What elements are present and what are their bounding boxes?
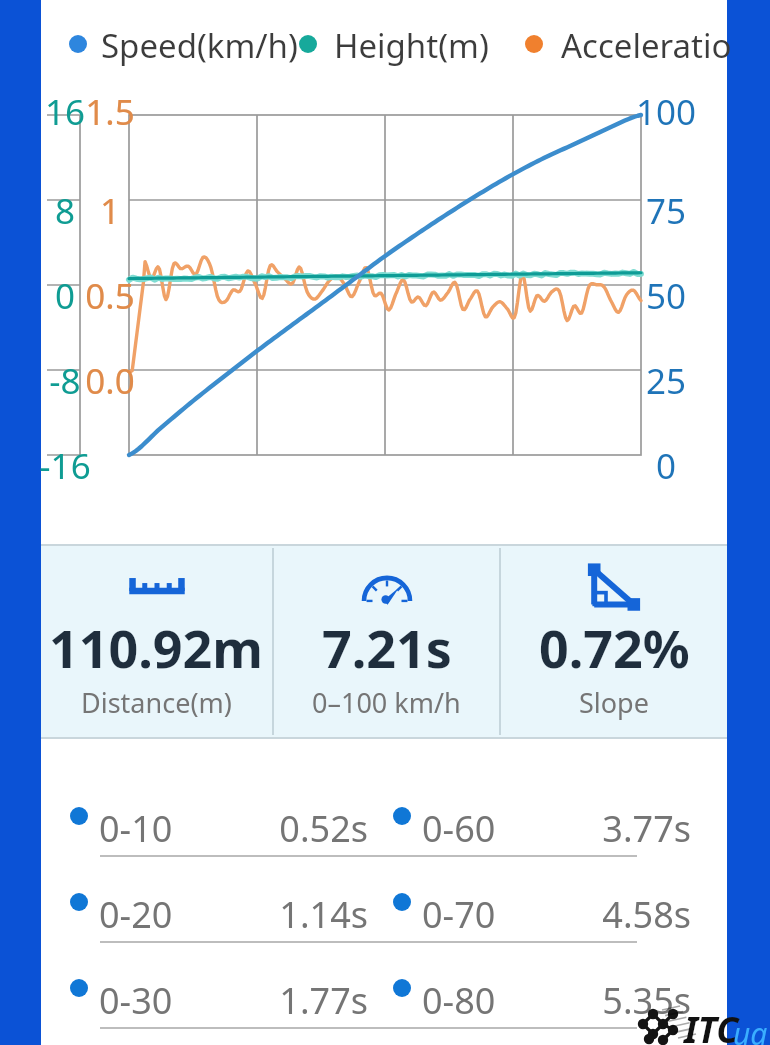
staticText: 1.5 (30, 88, 190, 136)
staticText: 0.5 (30, 272, 190, 320)
staticText: 0-60 (422, 804, 496, 853)
staticText: ua (733, 1013, 768, 1045)
staticText: 0.72% (539, 612, 690, 683)
button[interactable] (293, 22, 543, 66)
staticText: Speed(km/h) (101, 23, 298, 68)
staticText: 1.77s (148, 976, 368, 1025)
staticText: Height(m) (334, 23, 489, 68)
button[interactable] (390, 799, 703, 865)
staticText: 100 (586, 88, 746, 136)
staticText: -16 (0, 442, 145, 490)
staticText: 0-70 (422, 890, 496, 939)
staticText: 0.0 (30, 357, 190, 405)
staticText: 0-80 (422, 976, 496, 1025)
staticText: 7.21s (322, 612, 452, 683)
staticText: Acceleratio (561, 23, 732, 68)
button[interactable] (67, 799, 380, 865)
staticText: 8 (0, 187, 145, 235)
staticText: 0 (586, 442, 746, 490)
staticText: 1 (30, 187, 190, 235)
staticText: 25 (586, 357, 746, 405)
staticText: -8 (0, 357, 145, 405)
staticText: 0.52s (148, 804, 368, 853)
staticText: Slope (579, 684, 649, 721)
staticText: 0–100 km/h (312, 684, 461, 721)
button[interactable]: 0.72% (501, 546, 727, 737)
button[interactable]: 7.21s (274, 546, 499, 737)
button[interactable] (63, 22, 313, 66)
staticText: 0-10 (99, 804, 173, 853)
staticText: 0-30 (99, 976, 173, 1025)
button[interactable] (390, 885, 703, 951)
staticText: 16 (0, 88, 145, 136)
staticText: 0-20 (99, 890, 173, 939)
button[interactable] (67, 885, 380, 951)
staticText: 110.92m (49, 612, 264, 683)
button[interactable]: 110.92m (41, 546, 272, 737)
staticText: 75 (586, 187, 746, 235)
staticText: 1.14s (148, 890, 368, 939)
staticText: Distance(m) (81, 684, 232, 721)
staticText: ITC (684, 1005, 739, 1045)
button[interactable] (67, 971, 380, 1037)
staticText: 50 (586, 272, 746, 320)
staticText: 0 (0, 272, 145, 320)
staticText: 4.58s (471, 890, 691, 939)
staticText: 5.35s (471, 976, 691, 1025)
staticText: 3.77s (471, 804, 691, 853)
button[interactable] (519, 22, 769, 66)
button[interactable] (390, 971, 703, 1037)
